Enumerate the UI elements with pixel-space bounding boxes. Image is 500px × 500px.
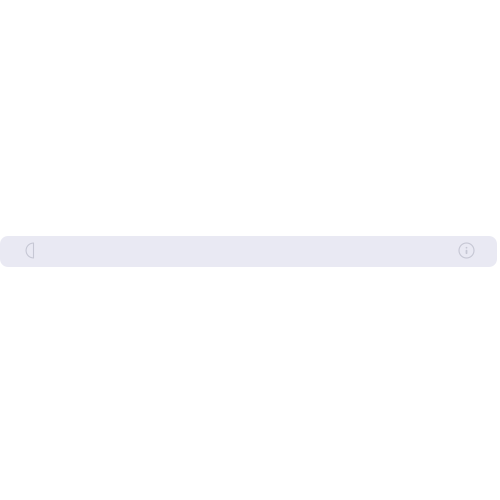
- button[interactable]: Account: [451, 236, 482, 267]
- button[interactable]: Appearance: [18, 236, 49, 267]
